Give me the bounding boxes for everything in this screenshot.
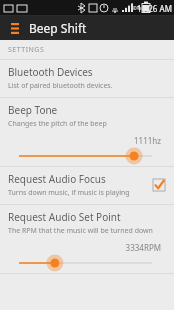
staticText: SETTINGS [8, 45, 45, 55]
button[interactable] [8, 255, 166, 271]
button[interactable]: Beep Tone [0, 98, 174, 166]
staticText: The RPM that the music will be turned do… [8, 226, 153, 236]
button[interactable]: Open navigation menu [6, 19, 24, 37]
staticText: Turns down music, if music is playing [8, 188, 130, 198]
staticText: 10:26 AM [137, 3, 172, 14]
staticText: Beep Shift [29, 20, 87, 36]
staticText: Request Audio Focus [8, 172, 106, 186]
button[interactable]: Request Audio Set Point [0, 205, 174, 273]
staticText: List of paired bluetooth devices. [8, 81, 113, 91]
staticText: 1111hz [8, 135, 161, 146]
button[interactable]: Bluetooth Devices [0, 60, 174, 97]
staticText: Request Audio Set Point [8, 210, 121, 224]
staticText: 3334RPM [8, 242, 161, 253]
staticText: Changes the pitch of the beep [8, 119, 107, 129]
staticText: Beep Tone [8, 103, 58, 117]
staticText: 80% [131, 5, 141, 12]
button[interactable]: Request Audio Focus [0, 167, 174, 204]
staticText: Bluetooth Devices [8, 65, 93, 79]
button[interactable] [8, 148, 166, 164]
